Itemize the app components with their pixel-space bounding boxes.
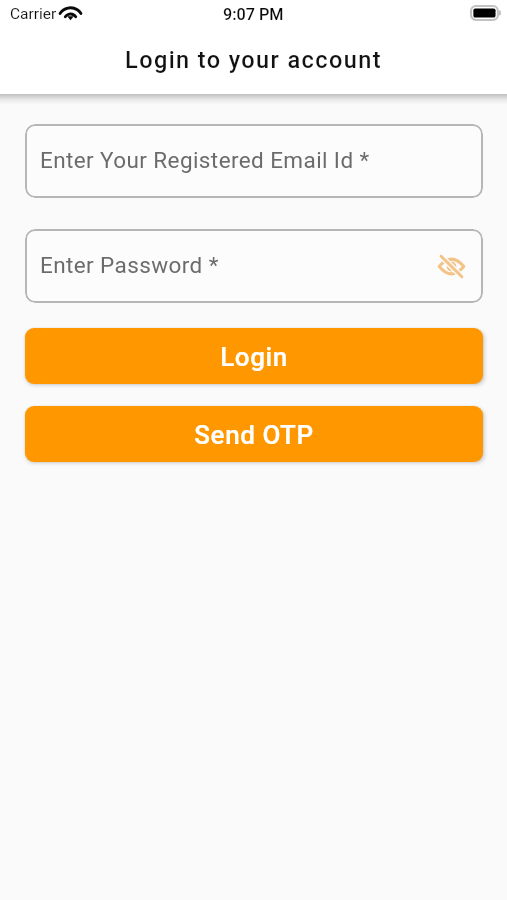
staticText: Login to your account [125, 46, 382, 74]
staticText: Login [220, 342, 288, 372]
staticText: Send OTP [194, 420, 314, 450]
button[interactable]: Enter Your Registered Email Id * [25, 124, 483, 198]
staticText: 9:07 PM [223, 5, 284, 24]
staticText: Enter Password * [40, 252, 219, 278]
staticText: Carrier [10, 5, 57, 23]
button[interactable]: Show password [433, 248, 469, 284]
button[interactable]: Login [25, 328, 483, 384]
button[interactable]: Enter Password * [25, 229, 483, 303]
button[interactable]: Send OTP [25, 406, 483, 462]
staticText: Enter Your Registered Email Id * [40, 147, 370, 173]
